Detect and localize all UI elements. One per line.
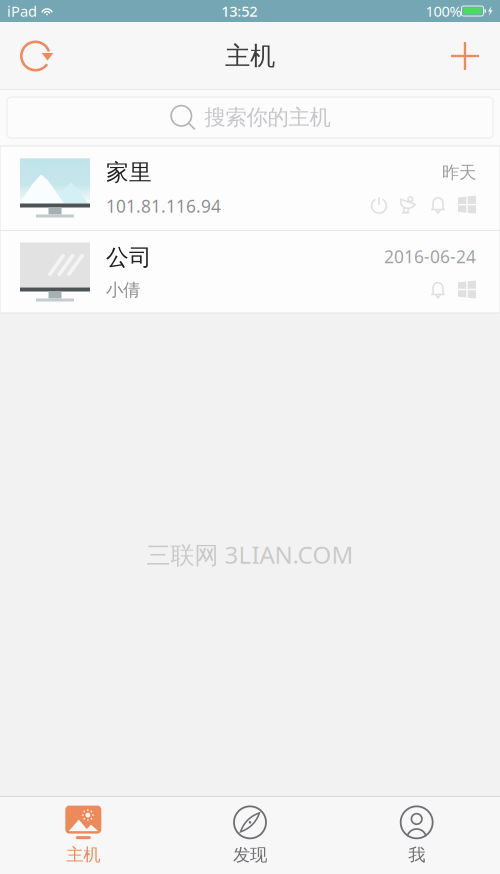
staticText: 搜索你的主机	[204, 104, 330, 131]
staticText: 昨天	[442, 162, 476, 183]
staticText: 主机	[225, 40, 275, 71]
staticText: 2016-06-24	[384, 245, 476, 268]
button[interactable]: 主机	[0, 797, 167, 874]
staticText: 我	[408, 844, 425, 866]
button[interactable]: 发现	[167, 797, 333, 874]
staticText: 100%	[425, 1, 461, 21]
staticText: 公司	[106, 243, 152, 271]
staticText: 13:52	[221, 1, 257, 21]
button[interactable]: 搜索你的主机	[0, 90, 500, 146]
staticText: 三联网 3LIAN.COM	[146, 539, 353, 570]
staticText: 发现	[233, 844, 267, 866]
button[interactable]: Refresh	[0, 22, 71, 90]
staticText: 家里	[106, 159, 152, 186]
staticText: 小倩	[106, 279, 140, 301]
button[interactable]: Add host	[430, 22, 500, 90]
staticText: 主机	[66, 844, 100, 865]
button[interactable]: 家里	[0, 146, 500, 230]
button[interactable]: 我	[333, 797, 500, 874]
button[interactable]: 公司	[0, 231, 500, 313]
staticText: iPad	[7, 1, 37, 21]
staticText: 101.81.116.94	[106, 194, 221, 217]
